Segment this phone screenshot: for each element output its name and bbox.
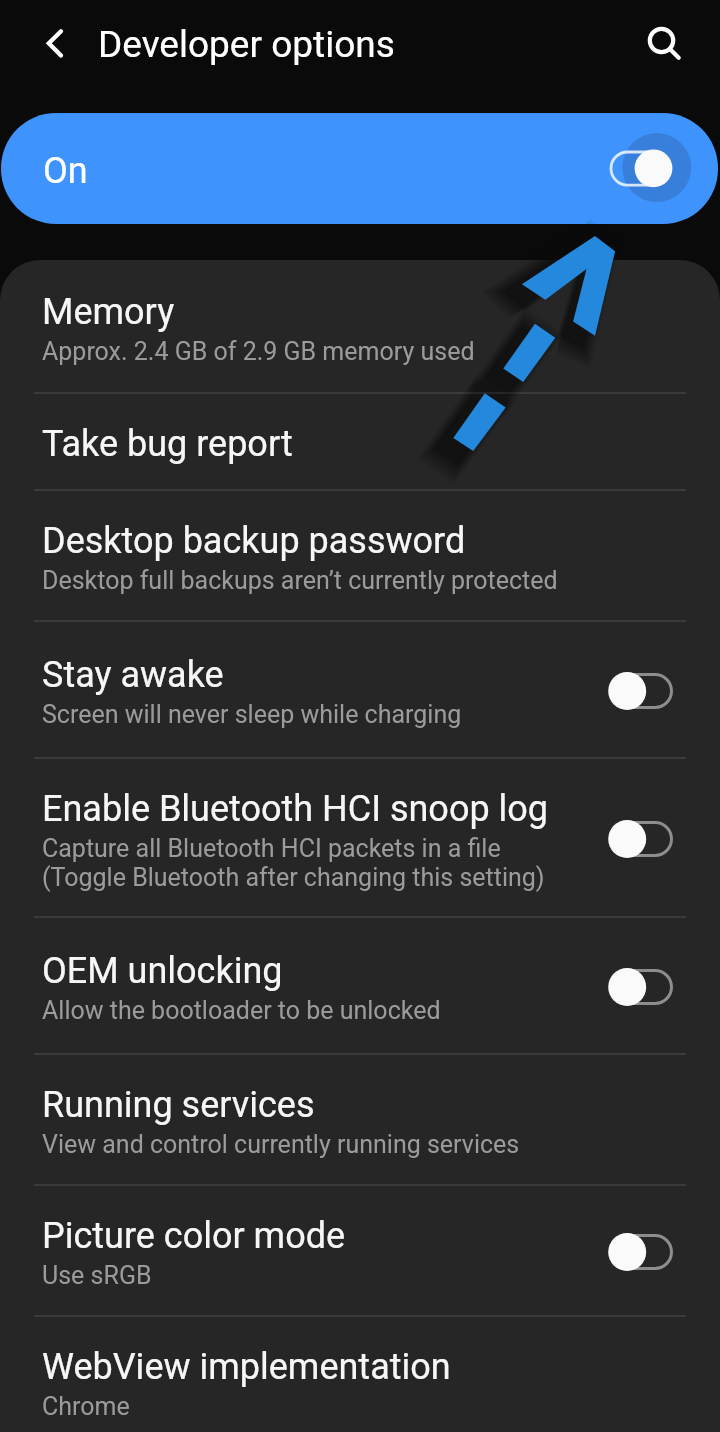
staticText: Developer options (98, 23, 395, 66)
staticText: On (43, 150, 88, 192)
staticText: Chrome (42, 1392, 130, 1421)
button[interactable]: Desktop backup password (0, 491, 720, 622)
staticText: Stay awake (42, 654, 224, 696)
staticText: Take bug report (42, 423, 293, 465)
button[interactable]: Stay awake (0, 622, 720, 759)
button[interactable]: WebView implementation (0, 1317, 720, 1432)
staticText: Capture all Bluetooth HCI packets in a f… (42, 834, 501, 863)
button[interactable]: On (1, 113, 718, 224)
staticText: Memory (42, 291, 175, 333)
staticText: Screen will never sleep while charging (42, 700, 462, 729)
staticText: Approx. 2.4 GB of 2.9 GB memory used (42, 337, 475, 366)
staticText: OEM unlocking (42, 950, 283, 992)
button[interactable]: OEM unlocking (0, 918, 720, 1055)
staticText: Running services (42, 1084, 315, 1126)
button[interactable]: Take bug report (0, 394, 720, 491)
staticText: Allow the bootloader to be unlocked (42, 996, 441, 1025)
button[interactable]: Memory (0, 260, 720, 394)
staticText: Enable Bluetooth HCI snoop log (42, 788, 549, 830)
staticText: Desktop backup password (42, 520, 466, 562)
button[interactable]: Stay awake (597, 660, 687, 722)
button[interactable]: Enable Bluetooth HCI snoop log (0, 759, 720, 918)
button[interactable]: Picture color mode (0, 1186, 720, 1317)
staticText: View and control currently running servi… (42, 1130, 520, 1159)
staticText: Use sRGB (42, 1261, 152, 1290)
button[interactable]: Search (633, 12, 690, 69)
button[interactable]: Running services (0, 1055, 720, 1186)
staticText: Desktop full backups aren’t currently pr… (42, 566, 558, 595)
button[interactable]: Picture color mode (597, 1221, 687, 1283)
staticText: (Toggle Bluetooth after changing this se… (42, 863, 545, 892)
staticText: Picture color mode (42, 1215, 346, 1257)
staticText: WebView implementation (42, 1346, 451, 1388)
button[interactable]: Enable Bluetooth HCI snoop log (597, 808, 687, 870)
button[interactable]: OEM unlocking (597, 956, 687, 1018)
button[interactable]: Back (27, 15, 83, 71)
